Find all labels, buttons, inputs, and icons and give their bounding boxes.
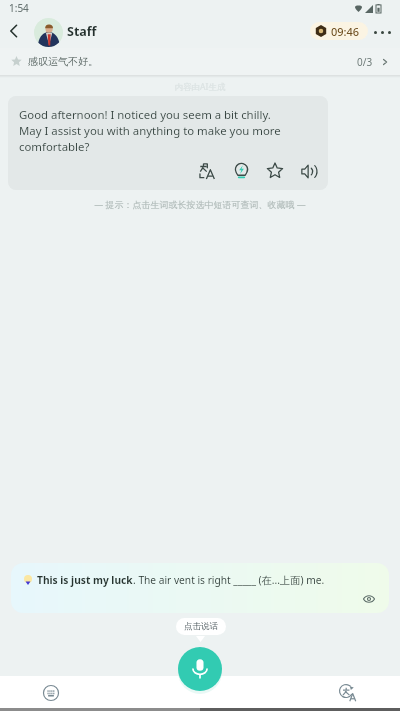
staticText: 点击说话 [184, 621, 218, 632]
button[interactable]: Favorite [264, 160, 286, 182]
staticText: Staff [67, 23, 97, 40]
button[interactable]: This is just my luck [11, 563, 389, 613]
button[interactable]: Record voice [178, 647, 222, 691]
staticText: . The air vent is right _____ (在...上面) m… [133, 573, 325, 587]
button[interactable]: Hint [230, 160, 252, 182]
button[interactable]: Good afternoon! I noticed you seem a bit… [8, 96, 328, 190]
staticText: 0/3 [357, 55, 373, 69]
staticText: 09:46 [331, 24, 360, 39]
staticText: — 提示：点击生词或长按选中短语可查词、收藏哦 — [0, 198, 400, 210]
staticText: Good afternoon! I noticed you seem a bit… [19, 107, 281, 155]
staticText: This is just my luck [37, 573, 133, 587]
button[interactable]: More options [370, 20, 394, 44]
button[interactable]: Staff avatar [34, 18, 63, 47]
button[interactable]: Play audio [298, 160, 320, 182]
staticText: 1:54 [9, 1, 29, 15]
button[interactable]: 点击说话 [176, 618, 226, 635]
staticText: 感叹运气不好。 [28, 55, 98, 68]
button[interactable]: Translate [339, 684, 357, 702]
button[interactable]: Back [2, 19, 26, 43]
button[interactable]: Keyboard [43, 685, 59, 701]
button[interactable]: 09:46 [310, 22, 368, 40]
button[interactable]: Translate [196, 160, 218, 182]
button[interactable]: Show answer [361, 591, 377, 607]
